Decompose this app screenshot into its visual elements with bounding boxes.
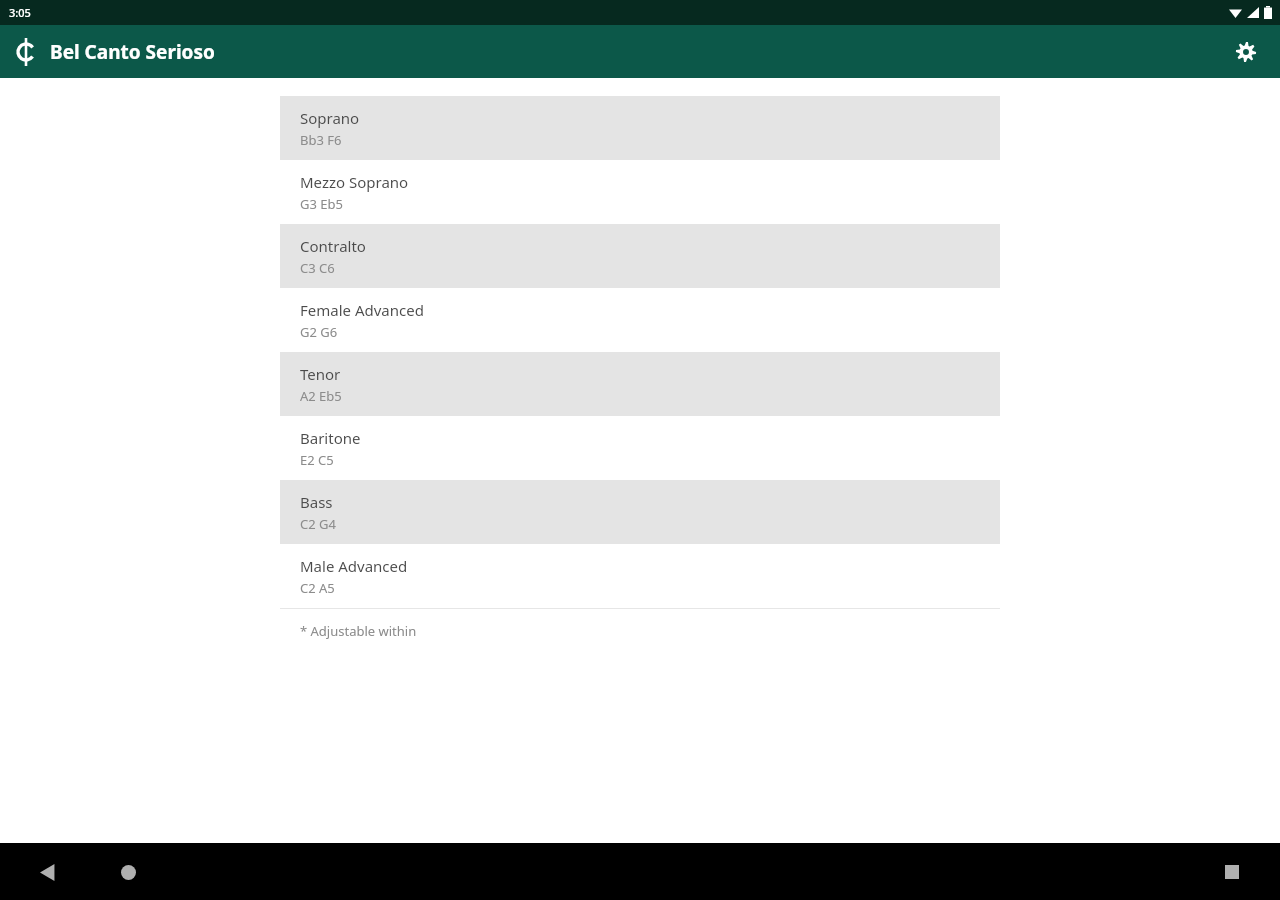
staticText: Female Advanced bbox=[300, 300, 424, 320]
staticText: Bass bbox=[300, 492, 333, 512]
staticText: Male Advanced bbox=[300, 556, 408, 576]
button[interactable]: Female Advanced bbox=[280, 288, 1000, 352]
staticText: * Adjustable within bbox=[300, 622, 417, 640]
button[interactable]: Soprano bbox=[280, 96, 1000, 160]
staticText: Mezzo Soprano bbox=[300, 172, 409, 192]
button[interactable]: Mezzo Soprano bbox=[280, 160, 1000, 224]
staticText: Baritone bbox=[300, 428, 361, 448]
staticText: G2 G6 bbox=[300, 323, 338, 341]
staticText: C2 G4 bbox=[300, 515, 336, 533]
button[interactable]: Recent apps bbox=[1206, 846, 1258, 898]
staticText: Tenor bbox=[300, 364, 341, 384]
staticText: Contralto bbox=[300, 236, 366, 256]
staticText: G3 Eb5 bbox=[300, 195, 343, 213]
button[interactable]: Back bbox=[22, 846, 74, 898]
button[interactable]: Home bbox=[102, 846, 154, 898]
button[interactable]: Contralto bbox=[280, 224, 1000, 288]
staticText: Soprano bbox=[300, 108, 360, 128]
staticText: 3:05 bbox=[9, 5, 31, 20]
staticText: A2 Eb5 bbox=[300, 387, 342, 405]
button[interactable]: Settings bbox=[1226, 32, 1266, 72]
staticText: E2 C5 bbox=[300, 451, 334, 469]
staticText: Bb3 F6 bbox=[300, 131, 342, 149]
staticText: C3 C6 bbox=[300, 259, 335, 277]
staticText: C2 A5 bbox=[300, 579, 335, 597]
button[interactable]: Bass bbox=[280, 480, 1000, 544]
button[interactable]: Baritone bbox=[280, 416, 1000, 480]
button[interactable]: Tenor bbox=[280, 352, 1000, 416]
staticText: Bel Canto Serioso bbox=[50, 39, 215, 65]
button[interactable]: Male Advanced bbox=[280, 544, 1000, 608]
